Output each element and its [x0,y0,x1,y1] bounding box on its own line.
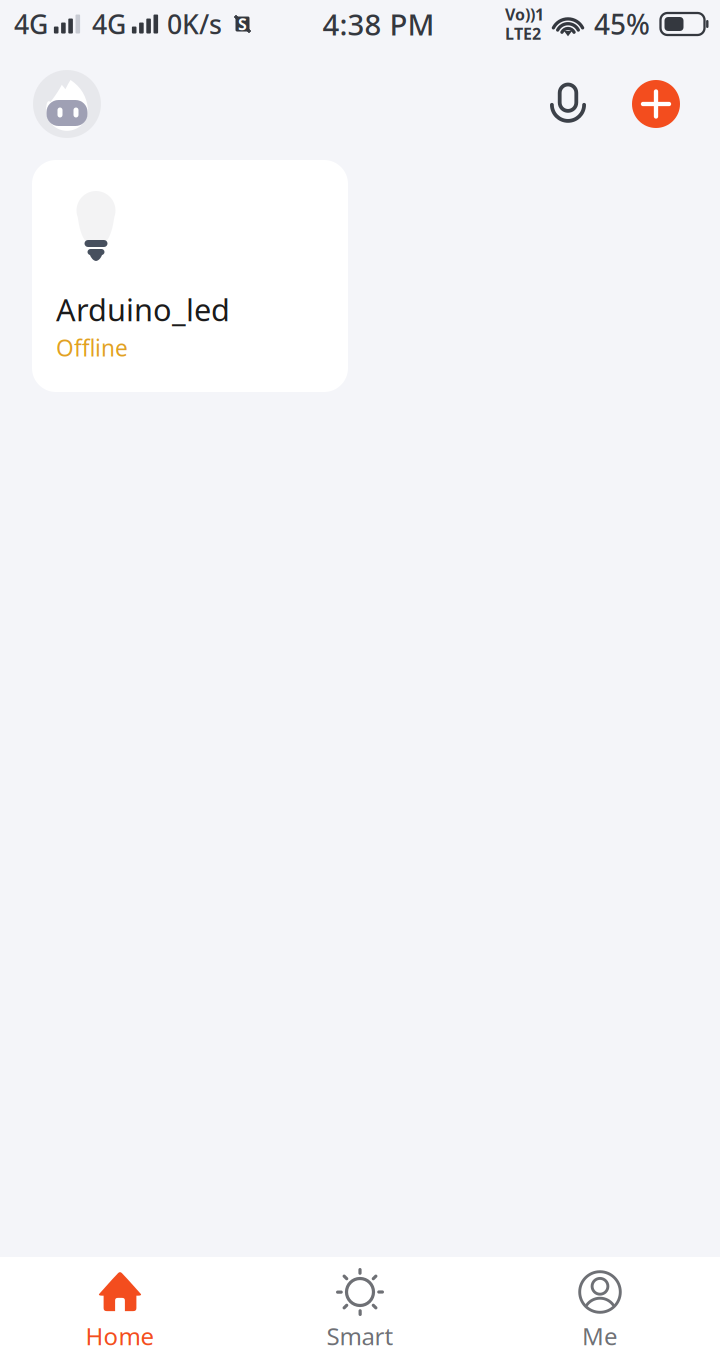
button[interactable]: Arduino_led [32,160,348,392]
staticText: 4G [14,6,48,42]
button[interactable]: Add device [632,80,680,128]
staticText: LTE2 [505,23,541,44]
staticText: Me [582,1320,618,1352]
staticText: 4G [92,6,126,42]
staticText: 4:38 PM [322,4,434,43]
button[interactable]: Home [0,1257,240,1356]
button[interactable]: Voice control [544,77,592,131]
button[interactable]: Profile [33,70,101,138]
staticText: Vo))1 [505,4,544,25]
staticText: 0K/s [167,6,222,42]
staticText: 45% [594,5,650,43]
staticText: Arduino_led [56,289,230,330]
staticText: Home [85,1320,154,1352]
staticText: Offline [56,333,128,363]
button[interactable]: Me [480,1257,720,1356]
staticText: Smart [326,1320,393,1352]
staticText: S [238,13,247,35]
button[interactable]: Smart [240,1257,480,1356]
